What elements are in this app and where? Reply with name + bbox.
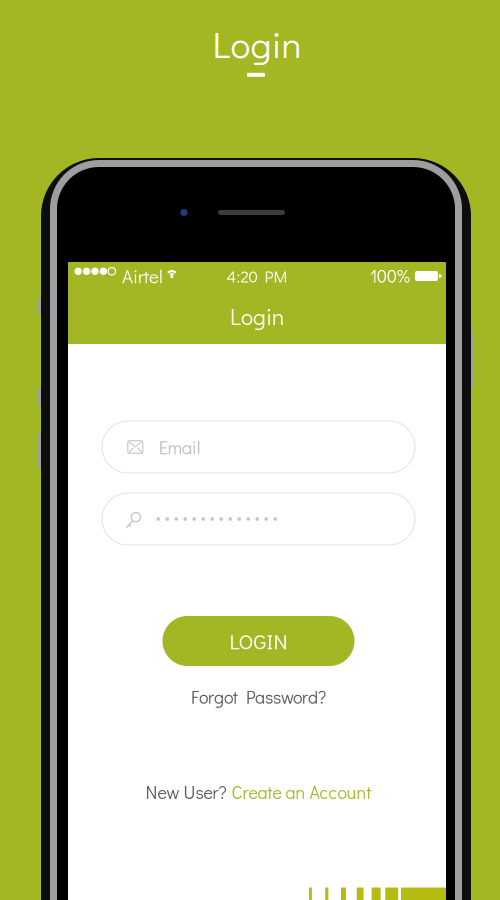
staticText: Forgot Password? [191, 685, 326, 708]
staticText: LOGIN [229, 627, 287, 655]
button[interactable]: Create an Account [231, 780, 371, 804]
staticText: Login [212, 19, 301, 68]
button[interactable]: Email [102, 421, 415, 473]
staticText: New User? [145, 780, 226, 804]
staticText: Email [159, 435, 201, 459]
staticText: Create an Account [231, 780, 371, 804]
staticText: Login [230, 301, 284, 331]
staticText: 100% [370, 264, 410, 288]
staticText: 4:20 PM [226, 265, 287, 287]
staticText: Airtel [122, 264, 163, 288]
button[interactable]: LOGIN [162, 616, 354, 666]
button[interactable] [102, 493, 415, 545]
button[interactable]: Forgot Password? [191, 685, 326, 708]
